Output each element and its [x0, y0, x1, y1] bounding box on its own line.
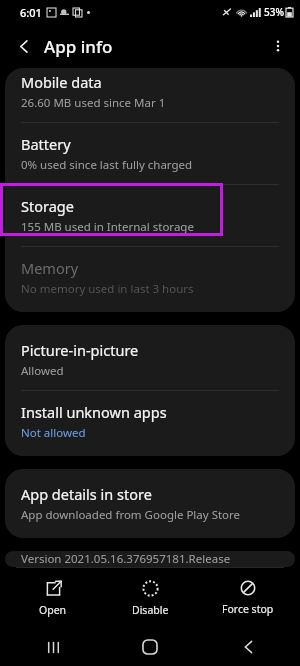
button[interactable]: Storage — [5, 185, 295, 246]
staticText: 26.60 MB used since Mar 1 — [21, 95, 166, 111]
staticText: App info — [44, 35, 113, 58]
button[interactable]: Battery — [5, 123, 295, 184]
button[interactable]: Open — [8, 576, 98, 621]
staticText: Memory — [21, 258, 79, 278]
staticText: Disable — [132, 603, 169, 617]
staticText: Not allowed — [21, 425, 86, 441]
button[interactable]: Memory — [5, 247, 295, 308]
staticText: Allowed — [21, 363, 64, 379]
staticText: Picture-in-picture — [21, 340, 139, 360]
button[interactable]: Recents — [8, 628, 98, 666]
button[interactable]: Force stop — [203, 576, 293, 620]
staticText: 0% used since last fully charged — [21, 157, 193, 173]
staticText: Storage — [21, 196, 74, 216]
button[interactable]: Mobile data — [5, 70, 295, 122]
staticText: Battery — [21, 134, 71, 154]
staticText: Open — [39, 603, 67, 617]
button[interactable]: Version 2021.05.16.376957181.Release — [5, 551, 295, 567]
button[interactable]: App details in store — [5, 473, 295, 534]
button[interactable]: Install unknown apps — [5, 391, 295, 452]
button[interactable]: Picture-in-picture — [5, 329, 295, 390]
button[interactable]: Home — [105, 628, 195, 666]
staticText: App details in store — [21, 484, 152, 504]
staticText: Install unknown apps — [21, 402, 167, 422]
staticText: Force stop — [222, 602, 274, 616]
staticText: 155 MB used in Internal storage — [21, 219, 194, 235]
staticText: Version 2021.05.16.376957181.Release — [21, 551, 231, 567]
button[interactable]: More options — [262, 30, 294, 62]
staticText: 6:01 — [20, 5, 42, 20]
button[interactable]: Back — [203, 628, 293, 666]
button[interactable]: Back — [8, 30, 40, 62]
button[interactable]: Disable — [105, 576, 195, 621]
staticText: No memory used in last 3 hours — [21, 281, 194, 297]
staticText: 53% — [264, 5, 284, 19]
staticText: App downloaded from Google Play Store — [21, 507, 241, 523]
staticText: Mobile data — [21, 72, 102, 92]
